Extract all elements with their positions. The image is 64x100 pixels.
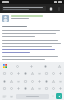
button[interactable]: Emoji (8, 70, 14, 76)
button[interactable]: Emoji (1, 70, 7, 76)
button[interactable]: Space (16, 94, 49, 99)
button[interactable]: Emoji (1, 85, 7, 91)
button[interactable]: Emoji (36, 70, 42, 76)
button[interactable]: Emoji (57, 70, 63, 76)
button[interactable]: Emoji (29, 78, 35, 84)
button[interactable]: Emoji (29, 85, 35, 91)
button[interactable]: Send (56, 93, 62, 99)
button[interactable]: Emoji keyboard (9, 94, 14, 99)
button[interactable]: Emoji (15, 85, 21, 91)
button[interactable]: Emoji (57, 85, 63, 91)
button[interactable]: Emoji (15, 70, 21, 76)
button[interactable]: Emoji (22, 85, 28, 91)
button[interactable]: Emoji (43, 70, 49, 76)
button[interactable]: Symbols (2, 94, 7, 99)
button[interactable]: Emoji (50, 85, 56, 91)
button[interactable]: Emoji (8, 85, 14, 91)
button[interactable]: Emoji (29, 70, 35, 76)
button[interactable]: Emoji (1, 78, 7, 84)
button[interactable] (0, 13, 64, 24)
button[interactable]: Emoji (43, 78, 49, 84)
button[interactable]: Sticker (42, 63, 48, 69)
button[interactable]: Emoji (22, 70, 28, 76)
button[interactable]: More options (56, 6, 62, 12)
button[interactable]: Emoji (22, 78, 28, 84)
button[interactable]: Emoji (50, 78, 56, 84)
button[interactable]: Emoji (15, 78, 21, 84)
button[interactable]: Attach (48, 6, 54, 12)
button[interactable]: Emoji (36, 85, 42, 91)
button[interactable]: Emoji (43, 85, 49, 91)
button[interactable]: Settings (56, 63, 62, 69)
button[interactable]: Emoji (36, 78, 42, 84)
button[interactable]: Emoji (57, 78, 63, 84)
button[interactable]: Share (14, 63, 20, 69)
button[interactable]: Period (51, 94, 55, 98)
button[interactable]: Clipboard (28, 63, 34, 69)
button[interactable]: Emoji (8, 78, 14, 84)
button[interactable] (2, 6, 46, 11)
button[interactable]: Emoji (50, 70, 56, 76)
button[interactable]: Keyboard settings (2, 63, 7, 68)
